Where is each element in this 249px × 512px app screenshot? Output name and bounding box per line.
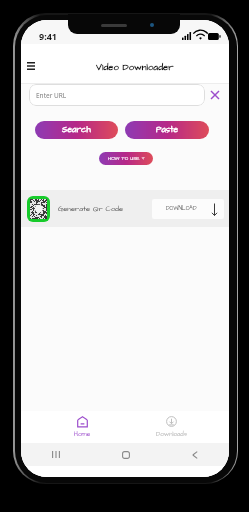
staticText: HOW TO USE ? bbox=[108, 155, 145, 162]
button[interactable]: Menu bbox=[22, 57, 40, 75]
staticText: 9:41 bbox=[39, 30, 57, 42]
button[interactable]: Enter URL bbox=[29, 84, 205, 106]
staticText: Generate Qr Code bbox=[58, 204, 124, 214]
staticText: Home bbox=[74, 430, 91, 439]
staticText: Search bbox=[62, 124, 91, 136]
button[interactable]: Generate Qr Code bbox=[21, 190, 229, 227]
staticText: Video Downloader bbox=[96, 61, 174, 74]
staticText: Paste bbox=[156, 124, 179, 136]
button[interactable]: Recents bbox=[21, 443, 91, 466]
button[interactable]: HOW TO USE ? bbox=[99, 152, 153, 165]
staticText: Enter URL bbox=[36, 91, 67, 100]
button[interactable]: Back bbox=[160, 443, 229, 466]
staticText: DOWNLOAD bbox=[166, 205, 197, 213]
button[interactable]: Clear bbox=[205, 84, 224, 106]
other: Download bbox=[211, 203, 218, 216]
button[interactable]: Home bbox=[38, 411, 127, 443]
button[interactable]: DOWNLOAD bbox=[152, 199, 224, 219]
button[interactable]: Paste bbox=[125, 121, 209, 139]
button[interactable]: Downloads bbox=[127, 411, 216, 443]
button[interactable]: Home bbox=[91, 443, 160, 466]
button[interactable]: Search bbox=[35, 121, 118, 139]
staticText: Downloads bbox=[156, 430, 187, 439]
